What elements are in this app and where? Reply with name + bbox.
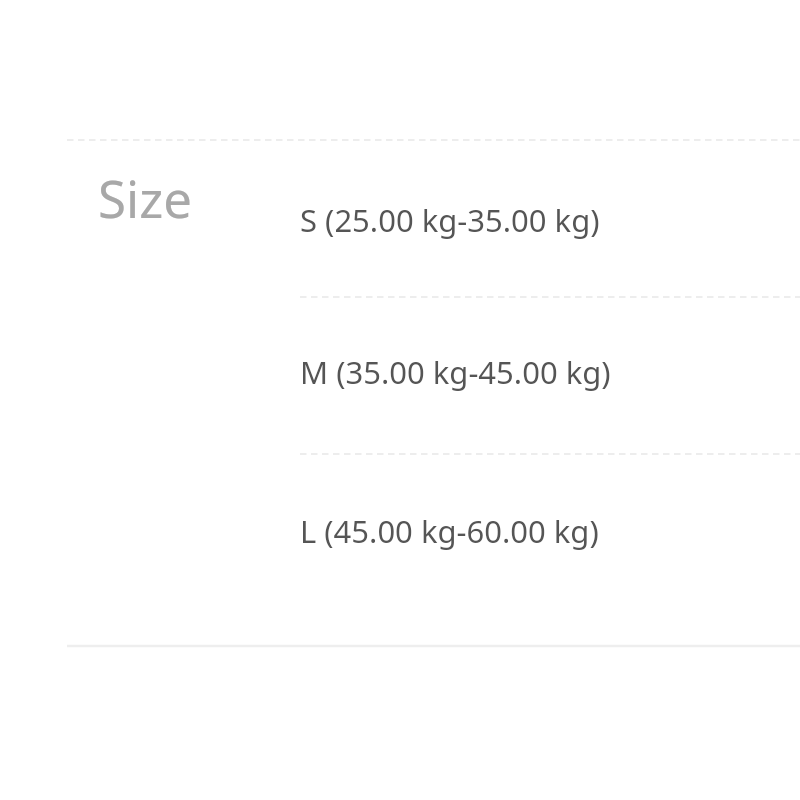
- staticText: M (35.00 kg-45.00 kg): [300, 351, 611, 393]
- staticText: S (25.00 kg-35.00 kg): [300, 199, 600, 241]
- button[interactable]: L (45.00 kg-60.00 kg): [300, 496, 599, 554]
- staticText: Size: [98, 163, 192, 232]
- staticText: L (45.00 kg-60.00 kg): [300, 510, 599, 552]
- button[interactable]: S (25.00 kg-35.00 kg): [300, 185, 600, 243]
- button[interactable]: M (35.00 kg-45.00 kg): [300, 337, 611, 395]
- button[interactable]: Size: [98, 163, 192, 232]
